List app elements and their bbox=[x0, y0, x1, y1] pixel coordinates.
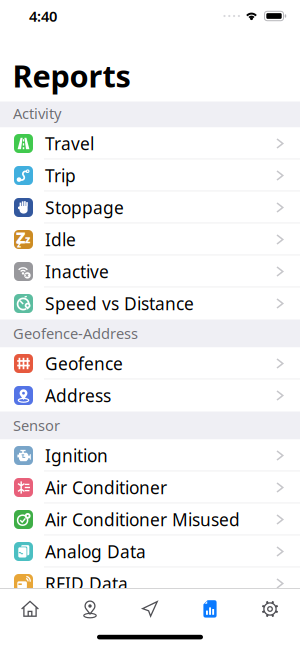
button[interactable]: Ignition bbox=[0, 439, 300, 471]
staticText: z bbox=[25, 232, 30, 246]
button[interactable]: Speed vs Distance bbox=[0, 287, 300, 319]
staticText: Travel bbox=[45, 132, 94, 155]
button[interactable]: Home bbox=[0, 593, 60, 625]
staticText: Trip bbox=[45, 164, 76, 187]
staticText: Address bbox=[45, 384, 111, 407]
button[interactable]: Air Conditioner bbox=[0, 471, 300, 503]
staticText: Inactive bbox=[45, 260, 109, 283]
staticText: Geofence-Address bbox=[13, 323, 138, 343]
staticText: Ignition bbox=[45, 444, 108, 467]
staticText: Geofence bbox=[45, 352, 123, 375]
button[interactable]: Settings bbox=[240, 593, 300, 625]
button[interactable]: Air Conditioner Misused bbox=[0, 503, 300, 535]
button[interactable]: Z bbox=[0, 223, 300, 255]
staticText: Analog Data bbox=[45, 540, 146, 563]
staticText: Stoppage bbox=[45, 196, 124, 219]
staticText: RFID Data bbox=[45, 572, 128, 595]
button[interactable]: Trip bbox=[0, 159, 300, 191]
button[interactable]: RFID Data bbox=[0, 567, 300, 599]
staticText: Z bbox=[16, 227, 26, 248]
staticText: Air Conditioner Misused bbox=[45, 508, 240, 531]
staticText: 4:40 bbox=[29, 6, 57, 26]
staticText: Reports bbox=[12, 55, 130, 96]
button[interactable]: Places bbox=[60, 593, 120, 625]
button[interactable]: Inactive bbox=[0, 255, 300, 287]
button[interactable]: Travel bbox=[0, 127, 300, 159]
staticText: z bbox=[17, 239, 21, 250]
button[interactable]: Analog Data bbox=[0, 535, 300, 567]
staticText: Speed vs Distance bbox=[45, 292, 194, 315]
button[interactable]: Navigate bbox=[120, 593, 180, 625]
staticText: Sensor bbox=[13, 415, 60, 435]
button[interactable]: Reports bbox=[180, 593, 240, 625]
staticText: Air Conditioner bbox=[45, 476, 167, 499]
button[interactable]: Address bbox=[0, 379, 300, 411]
button[interactable]: Geofence bbox=[0, 347, 300, 379]
staticText: Activity bbox=[13, 103, 61, 123]
staticText: Idle bbox=[45, 228, 76, 251]
button[interactable]: Stoppage bbox=[0, 191, 300, 223]
